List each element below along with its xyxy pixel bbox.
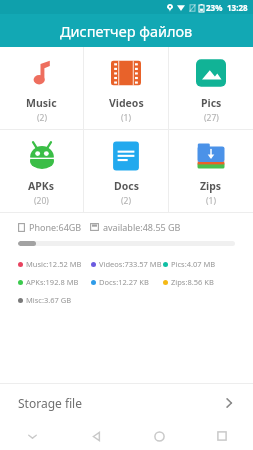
staticText: Videos	[109, 96, 144, 110]
staticText: (27)	[204, 112, 219, 124]
staticText: APKs	[28, 179, 55, 193]
button[interactable]: Back	[84, 424, 108, 448]
button[interactable]: Recents	[210, 424, 234, 448]
staticText: Phone:64GB	[29, 221, 82, 233]
button[interactable]: Videos	[84, 47, 168, 129]
button[interactable]: Music	[0, 47, 83, 129]
button[interactable]: Hide keyboard	[20, 424, 44, 448]
button[interactable]: Storage file	[0, 384, 253, 421]
staticText: Videos:733.57 MB	[99, 259, 162, 269]
staticText: (2)	[121, 195, 131, 207]
staticText: Storage file	[18, 395, 82, 411]
staticText: APKs:192.8 MB	[26, 277, 79, 287]
staticText: Pics:4.07 MB	[171, 259, 216, 269]
staticText: Misc:3.67 GB	[26, 295, 72, 305]
staticText: Диспетчер файлов	[60, 21, 193, 41]
button[interactable]: Docs	[84, 130, 168, 212]
button[interactable]: APKs	[0, 130, 83, 212]
staticText: (20)	[34, 195, 49, 207]
staticText: (1)	[121, 112, 131, 124]
staticText: (1)	[206, 195, 216, 207]
staticText: 13:28	[227, 2, 248, 13]
staticText: Music	[26, 96, 57, 110]
button[interactable]: Home	[147, 424, 171, 448]
staticText: (2)	[37, 112, 47, 124]
staticText: Music:12.52 MB	[26, 259, 82, 269]
staticText: 23%	[206, 2, 223, 13]
button[interactable]: Zips	[169, 130, 253, 212]
staticText: Zips	[200, 179, 222, 193]
staticText: Docs	[114, 179, 139, 193]
staticText: Docs:12.27 KB	[99, 277, 149, 287]
staticText: Pics	[201, 96, 222, 110]
staticText: available:48.55 GB	[103, 221, 181, 233]
button[interactable]: Pics	[169, 47, 253, 129]
staticText: Zips:8.56 KB	[171, 277, 214, 287]
